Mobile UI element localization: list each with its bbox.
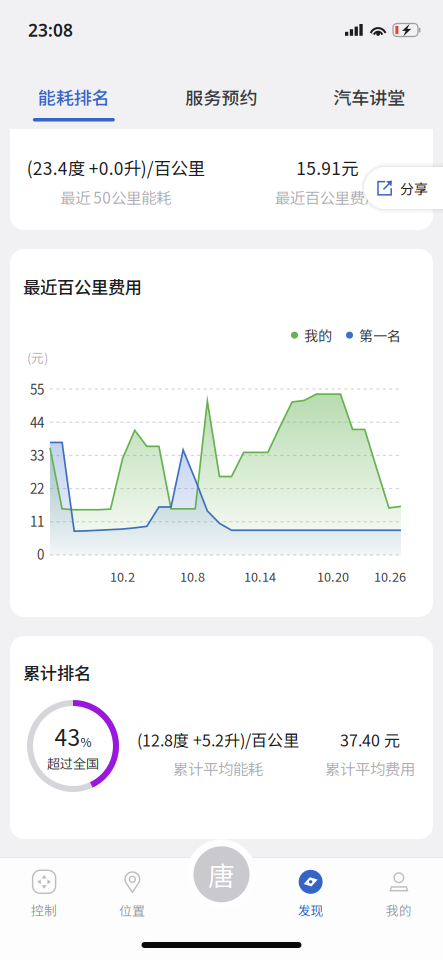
- staticText: 最近 50公里能耗: [60, 186, 171, 208]
- button[interactable]: 汽车讲堂: [295, 60, 443, 129]
- staticText: 10.14: [244, 567, 276, 585]
- staticText: (12.8度 +5.2升)/百公里: [137, 728, 299, 751]
- button[interactable]: 服务预约: [148, 60, 295, 129]
- staticText: 37.40 元: [340, 728, 400, 751]
- staticText: 累计排名: [23, 660, 91, 685]
- staticText: 服务预约: [185, 84, 257, 110]
- staticText: 10.26: [374, 567, 406, 585]
- staticText: 最近百公里费用: [23, 274, 142, 299]
- staticText: 10.2: [110, 567, 135, 585]
- button[interactable]: 发现: [266, 858, 355, 930]
- staticText: 33: [30, 445, 44, 465]
- staticText: 0: [37, 544, 44, 564]
- staticText: 最近百公里费用: [275, 186, 380, 208]
- staticText: (元): [27, 348, 48, 366]
- button[interactable]: 位置: [88, 858, 176, 930]
- staticText: %: [80, 733, 91, 750]
- staticText: 23:08: [28, 18, 73, 41]
- button[interactable]: 控制: [0, 858, 88, 930]
- staticText: 10.20: [317, 567, 349, 585]
- staticText: 我的: [304, 325, 332, 345]
- button[interactable]: 分享: [361, 163, 443, 213]
- staticText: 我的: [386, 901, 412, 919]
- staticText: (23.4度 +0.0升)/百公里: [27, 155, 205, 180]
- staticText: 发现: [298, 901, 324, 919]
- staticText: 汽车讲堂: [333, 84, 405, 110]
- staticText: 第一名: [359, 325, 401, 345]
- staticText: 分享: [400, 178, 428, 198]
- staticText: 10.8: [180, 567, 205, 585]
- staticText: 超过全国: [47, 753, 99, 772]
- staticText: 43: [54, 720, 80, 752]
- staticText: 累计平均能耗: [173, 757, 263, 779]
- staticText: 控制: [31, 901, 57, 919]
- staticText: 能耗排名: [38, 84, 110, 110]
- button[interactable]: 能耗排名: [0, 60, 148, 129]
- staticText: 15.91元: [296, 155, 358, 180]
- staticText: 44: [30, 412, 44, 432]
- staticText: 位置: [119, 901, 145, 919]
- button[interactable]: 唐: [186, 839, 256, 909]
- staticText: 11: [30, 511, 44, 531]
- staticText: 唐: [208, 855, 235, 894]
- staticText: 累计平均费用: [325, 757, 415, 779]
- staticText: 22: [30, 478, 44, 498]
- button[interactable]: 我的: [355, 858, 443, 930]
- staticText: 55: [30, 379, 44, 399]
